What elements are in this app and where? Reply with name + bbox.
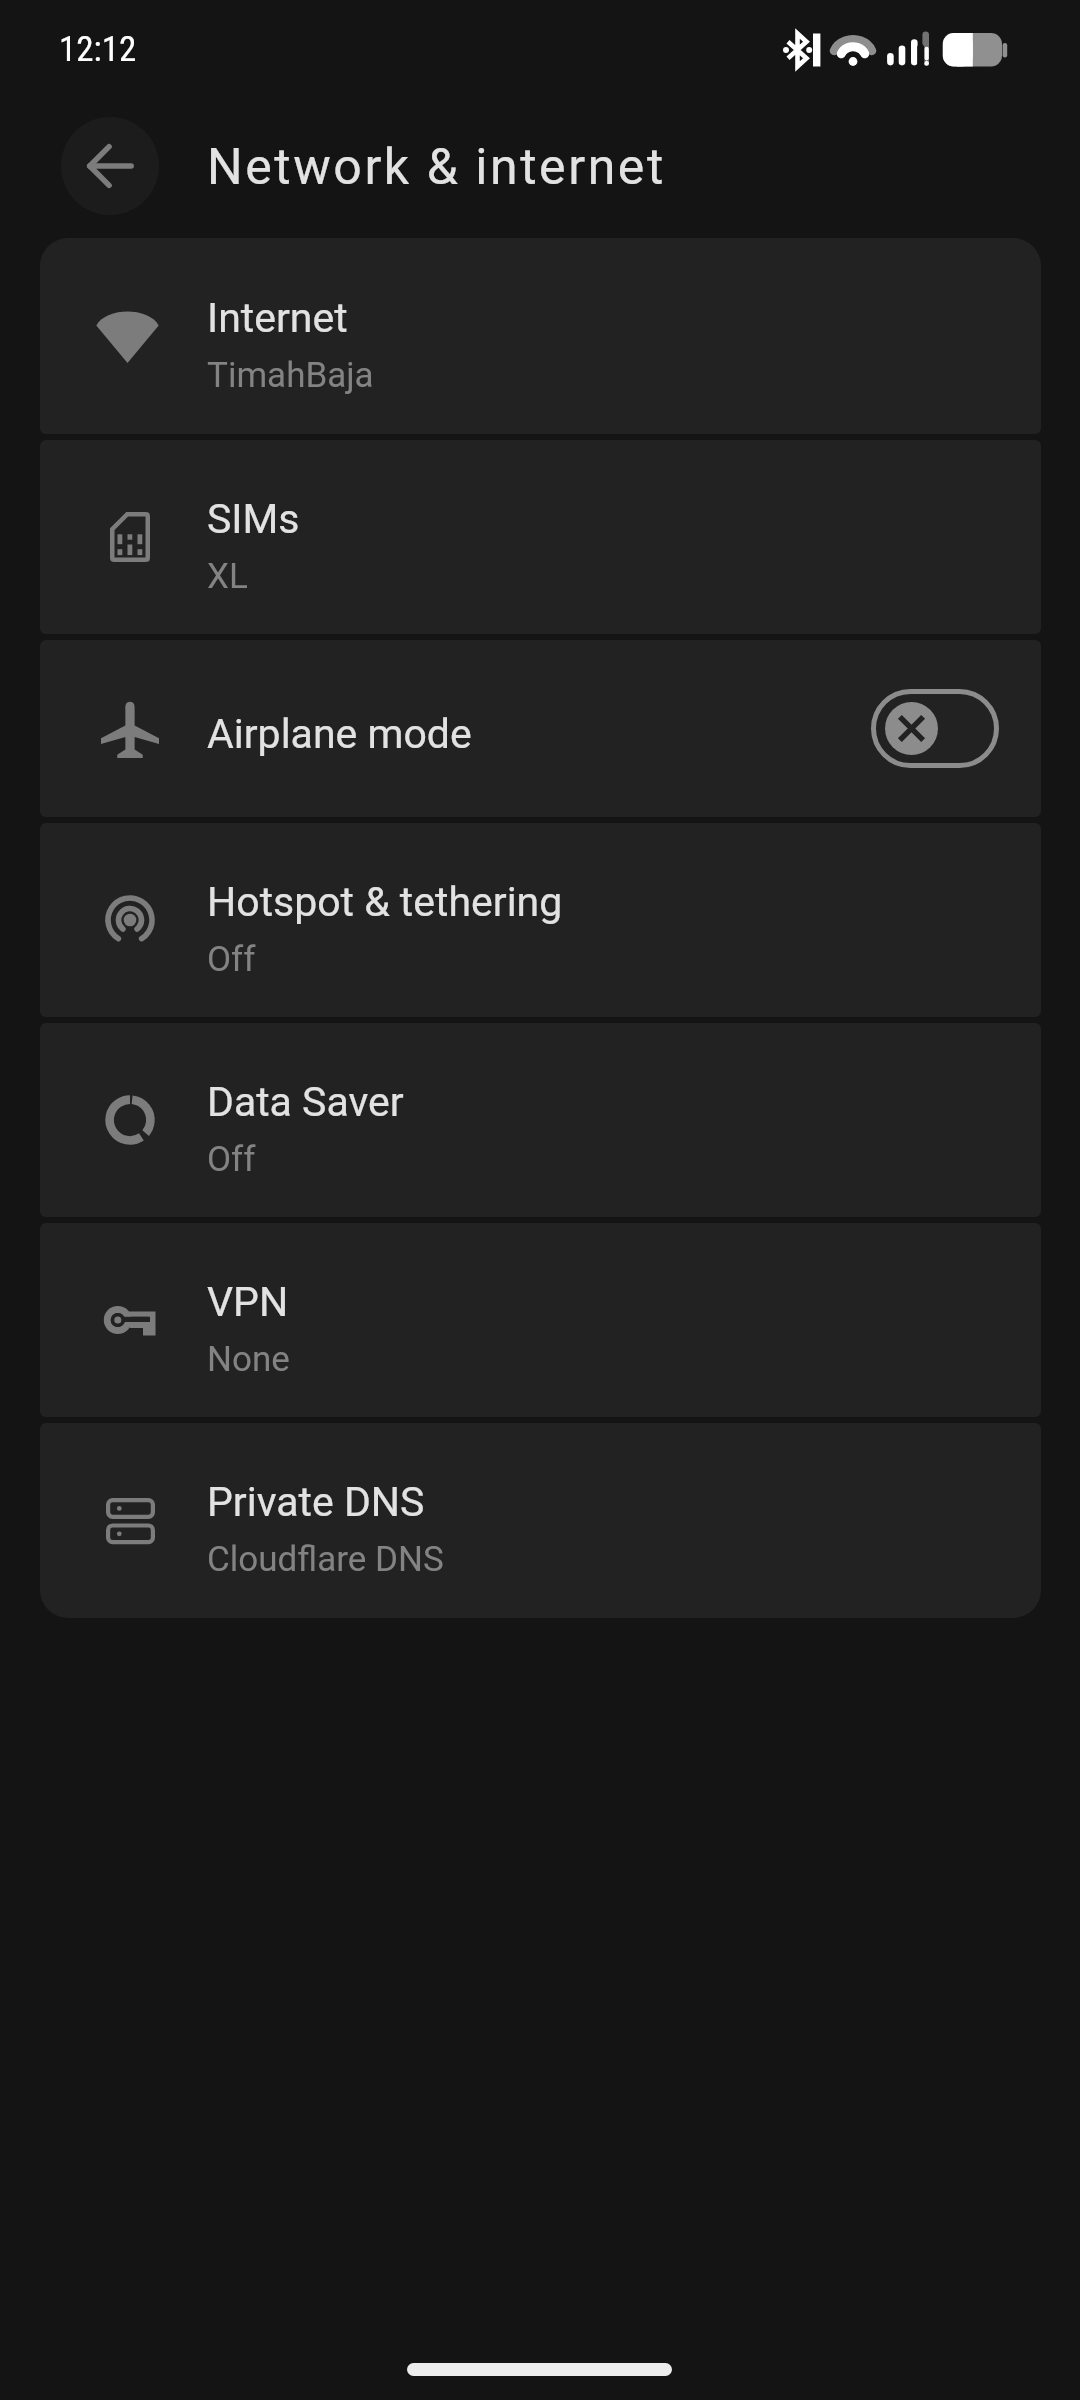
staticText: None: [207, 1339, 290, 1380]
staticText: TimahBaja: [207, 355, 374, 396]
staticText: Off: [207, 939, 256, 980]
button[interactable]: VPN: [40, 1223, 1041, 1417]
button[interactable]: Airplane mode: [40, 640, 1041, 817]
button[interactable]: Private DNS: [40, 1423, 1041, 1618]
staticText: Internet: [207, 294, 348, 342]
staticText: Data Saver: [207, 1078, 404, 1126]
button[interactable]: Internet: [40, 238, 1041, 434]
button[interactable]: Airplane mode: [871, 689, 999, 768]
staticText: 12:12: [59, 29, 137, 70]
button[interactable]: Hotspot & tethering: [40, 823, 1041, 1017]
button[interactable]: Back: [61, 117, 159, 215]
staticText: Hotspot & tethering: [207, 878, 563, 926]
staticText: VPN: [207, 1278, 289, 1326]
button[interactable]: SIMs: [40, 440, 1041, 634]
staticText: Airplane mode: [207, 710, 472, 758]
staticText: Off: [207, 1139, 256, 1180]
staticText: Network & internet: [207, 138, 666, 197]
staticText: XL: [207, 556, 248, 597]
button[interactable]: Data Saver: [40, 1023, 1041, 1217]
staticText: SIMs: [207, 495, 300, 543]
staticText: Cloudflare DNS: [207, 1539, 444, 1580]
staticText: Private DNS: [207, 1478, 425, 1526]
